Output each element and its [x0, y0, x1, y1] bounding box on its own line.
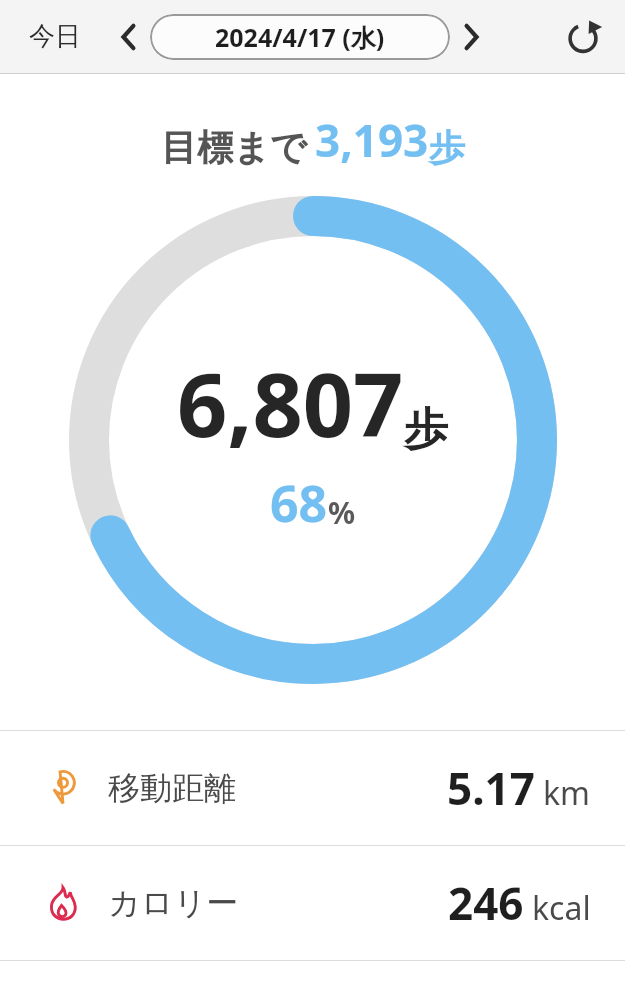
button[interactable]: 更新 [555, 9, 611, 65]
staticText: 移動距離 [108, 768, 236, 808]
staticText: 目標まで [161, 125, 307, 170]
staticText: kcal [532, 886, 591, 930]
staticText: 歩 [429, 125, 465, 170]
staticText: 歩 [404, 402, 448, 457]
staticText: 今日 [29, 20, 81, 53]
staticText: 3,193 [315, 110, 429, 170]
staticText: 5.17 [447, 758, 535, 818]
button[interactable]: カロリー [0, 846, 625, 960]
button[interactable]: 2024/4/17 (水) [150, 14, 450, 60]
staticText: 246 [448, 873, 524, 933]
staticText: カロリー [108, 883, 239, 923]
staticText: % [328, 492, 356, 533]
button[interactable]: 今日 [26, 14, 84, 59]
staticText: 68 [270, 469, 328, 537]
staticText: 2024/4/17 (水) [215, 20, 385, 54]
button[interactable]: 前の日 [112, 14, 146, 60]
staticText: 6,807 [177, 343, 404, 463]
button[interactable]: 次の日 [454, 14, 488, 60]
staticText: km [543, 771, 591, 815]
button[interactable]: 移動距離 [0, 731, 625, 845]
